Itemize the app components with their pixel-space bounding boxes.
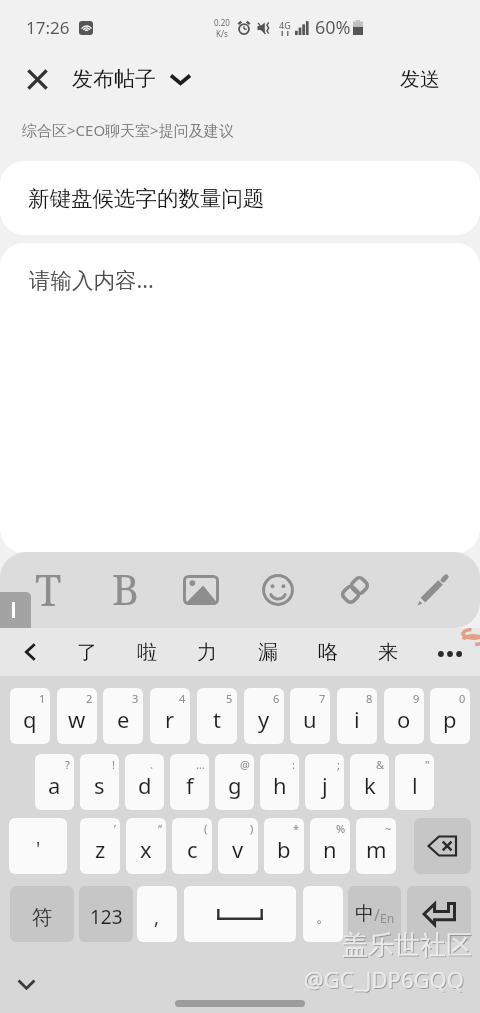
button[interactable]: i	[337, 688, 377, 744]
staticText: u	[303, 704, 317, 734]
staticText: 4G	[279, 19, 291, 31]
button[interactable]: Text style	[22, 560, 74, 620]
button[interactable]: Close	[16, 58, 58, 100]
staticText: 力	[197, 640, 217, 665]
button[interactable]: j	[305, 754, 344, 810]
staticText: (	[204, 821, 208, 836]
staticText: 0.20	[214, 17, 230, 28]
button[interactable]: 。	[303, 886, 343, 942]
button[interactable]: 来	[368, 630, 408, 674]
staticText: T	[35, 560, 62, 619]
staticText: “	[158, 821, 162, 836]
staticText: 盖乐世社区	[343, 930, 473, 963]
staticText: y	[258, 704, 270, 734]
staticText: 咯	[318, 640, 338, 665]
button[interactable]: ,	[137, 886, 177, 942]
button[interactable]: Space	[184, 886, 296, 942]
button[interactable]: y	[244, 688, 284, 744]
button[interactable]: x	[126, 818, 166, 874]
staticText: p	[443, 704, 457, 734]
button[interactable]: '	[9, 818, 67, 874]
staticText: 3	[132, 691, 139, 706]
staticText: 、	[149, 757, 160, 771]
staticText: %	[336, 821, 346, 836]
button[interactable]: z	[80, 818, 120, 874]
staticText: 新键盘候选字的数量问题	[28, 185, 265, 212]
button[interactable]: Insert image	[175, 560, 227, 620]
button[interactable]: 啦	[127, 630, 167, 674]
button[interactable]: m	[356, 818, 396, 874]
button[interactable]: f	[170, 754, 209, 810]
button[interactable]: 发布帖子	[68, 60, 196, 98]
staticText: w	[68, 704, 86, 734]
staticText: t	[213, 704, 221, 734]
staticText: ;	[337, 757, 340, 772]
staticText: q	[23, 704, 37, 734]
button[interactable]: 123	[79, 886, 133, 942]
staticText: ’	[114, 821, 116, 836]
button[interactable]: l	[395, 754, 434, 810]
staticText: 123	[90, 904, 123, 930]
button[interactable]: u	[290, 688, 330, 744]
button[interactable]: w	[57, 688, 97, 744]
button[interactable]: Enter	[407, 886, 471, 942]
button[interactable]: Backspace	[414, 818, 471, 874]
button[interactable]: d	[125, 754, 164, 810]
staticText: m	[366, 834, 387, 864]
button[interactable]: Insert link	[329, 560, 381, 620]
staticText: )	[250, 821, 254, 836]
button[interactable]: b	[264, 818, 304, 874]
button[interactable]: More candidates	[432, 636, 468, 672]
staticText: "	[425, 757, 430, 772]
staticText: j	[322, 770, 328, 800]
button[interactable]: e	[103, 688, 143, 744]
button[interactable]: c	[172, 818, 212, 874]
button[interactable]: Emoji	[252, 560, 304, 620]
button[interactable]: k	[350, 754, 389, 810]
staticText: En	[380, 910, 395, 926]
button[interactable]: v	[218, 818, 258, 874]
staticText: 发布帖子	[72, 66, 156, 92]
button[interactable]: a	[35, 754, 74, 810]
button[interactable]: r	[150, 688, 190, 744]
staticText: f	[186, 770, 194, 800]
button[interactable]: q	[10, 688, 50, 744]
staticText: k	[364, 770, 376, 800]
button[interactable]: p	[430, 688, 470, 744]
button[interactable]: Hide keyboard	[10, 968, 42, 1000]
staticText: n	[323, 834, 337, 864]
button[interactable]: 漏	[248, 630, 288, 674]
staticText: 8	[366, 691, 373, 706]
button[interactable]: o	[384, 688, 424, 744]
staticText: 5	[226, 691, 233, 706]
button[interactable]: 力	[187, 630, 227, 674]
button[interactable]: 咯	[308, 630, 348, 674]
button[interactable]: Draw	[406, 560, 458, 620]
staticText: s	[94, 770, 105, 800]
staticText: @GC_JDP6GQQ	[304, 964, 464, 994]
button[interactable]: g	[215, 754, 254, 810]
staticText: 来	[378, 640, 398, 665]
button[interactable]: Text cursor	[0, 592, 31, 628]
staticText: 盖乐世社区	[342, 929, 472, 962]
staticText: ?	[65, 757, 70, 772]
staticText: x	[140, 834, 152, 864]
staticText: 。	[316, 908, 331, 927]
button[interactable]: 了	[67, 630, 107, 674]
staticText: 2	[86, 691, 93, 706]
button[interactable]: Bold	[99, 560, 151, 620]
button[interactable]: Chinese English toggle	[348, 886, 401, 942]
button[interactable]: s	[80, 754, 119, 810]
staticText: d	[138, 770, 152, 800]
button[interactable]: 新键盘候选字的数量问题	[0, 161, 480, 235]
button[interactable]: h	[260, 754, 299, 810]
button[interactable]: 发送	[394, 61, 446, 98]
staticText: z	[95, 834, 106, 864]
button[interactable]: n	[310, 818, 350, 874]
button[interactable]: 请输入内容...	[0, 243, 480, 553]
button[interactable]: 符	[10, 886, 74, 942]
staticText: !	[112, 757, 115, 772]
button[interactable]: Previous page	[14, 636, 46, 668]
staticText: 9	[413, 691, 420, 706]
button[interactable]: t	[197, 688, 237, 744]
